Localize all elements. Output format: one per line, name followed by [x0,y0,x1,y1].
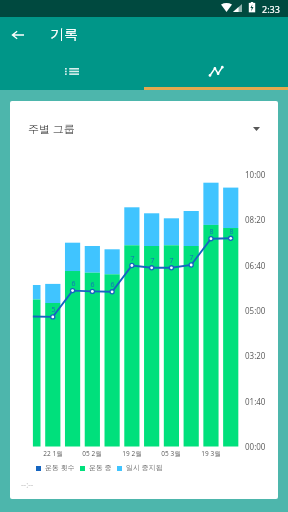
staticText: 6 [90,280,95,290]
staticText: 6 [110,280,115,290]
staticText: 8 [229,227,234,237]
staticText: 00:00 [245,441,266,452]
staticText: 03:20 [245,350,266,361]
button[interactable]: List view [0,53,144,90]
staticText: 19 2월 [122,449,142,458]
staticText: 06:40 [245,260,266,271]
staticText: 5 [51,305,56,315]
staticText: 8 [209,227,214,237]
staticText: --:-- [21,479,34,490]
staticText: 22 1월 [43,449,63,458]
staticText: 08:20 [245,214,266,225]
staticText: 7 [150,256,155,266]
staticText: 05 2월 [82,449,102,458]
button[interactable]: Back [0,17,36,53]
staticText: 운동 횟수 [45,463,75,473]
button[interactable]: 주별 그룹 [10,111,278,146]
staticText: 주별 그룹 [28,121,75,136]
staticText: 05:00 [245,305,266,316]
staticText: 05 3월 [161,449,181,458]
staticText: 6 [71,279,76,289]
staticText: 01:40 [245,396,266,407]
staticText: 기록 [50,26,78,44]
staticText: 7 [169,256,174,266]
staticText: 2:33 [262,3,280,15]
staticText: 19 3월 [201,449,221,458]
staticText: 7 [189,253,194,263]
staticText: 운동 중 [89,463,112,473]
staticText: 10:00 [245,169,266,180]
staticText: 7 [130,254,135,264]
staticText: 일시 중지됨 [126,463,163,473]
button[interactable]: Chart view [144,53,288,90]
